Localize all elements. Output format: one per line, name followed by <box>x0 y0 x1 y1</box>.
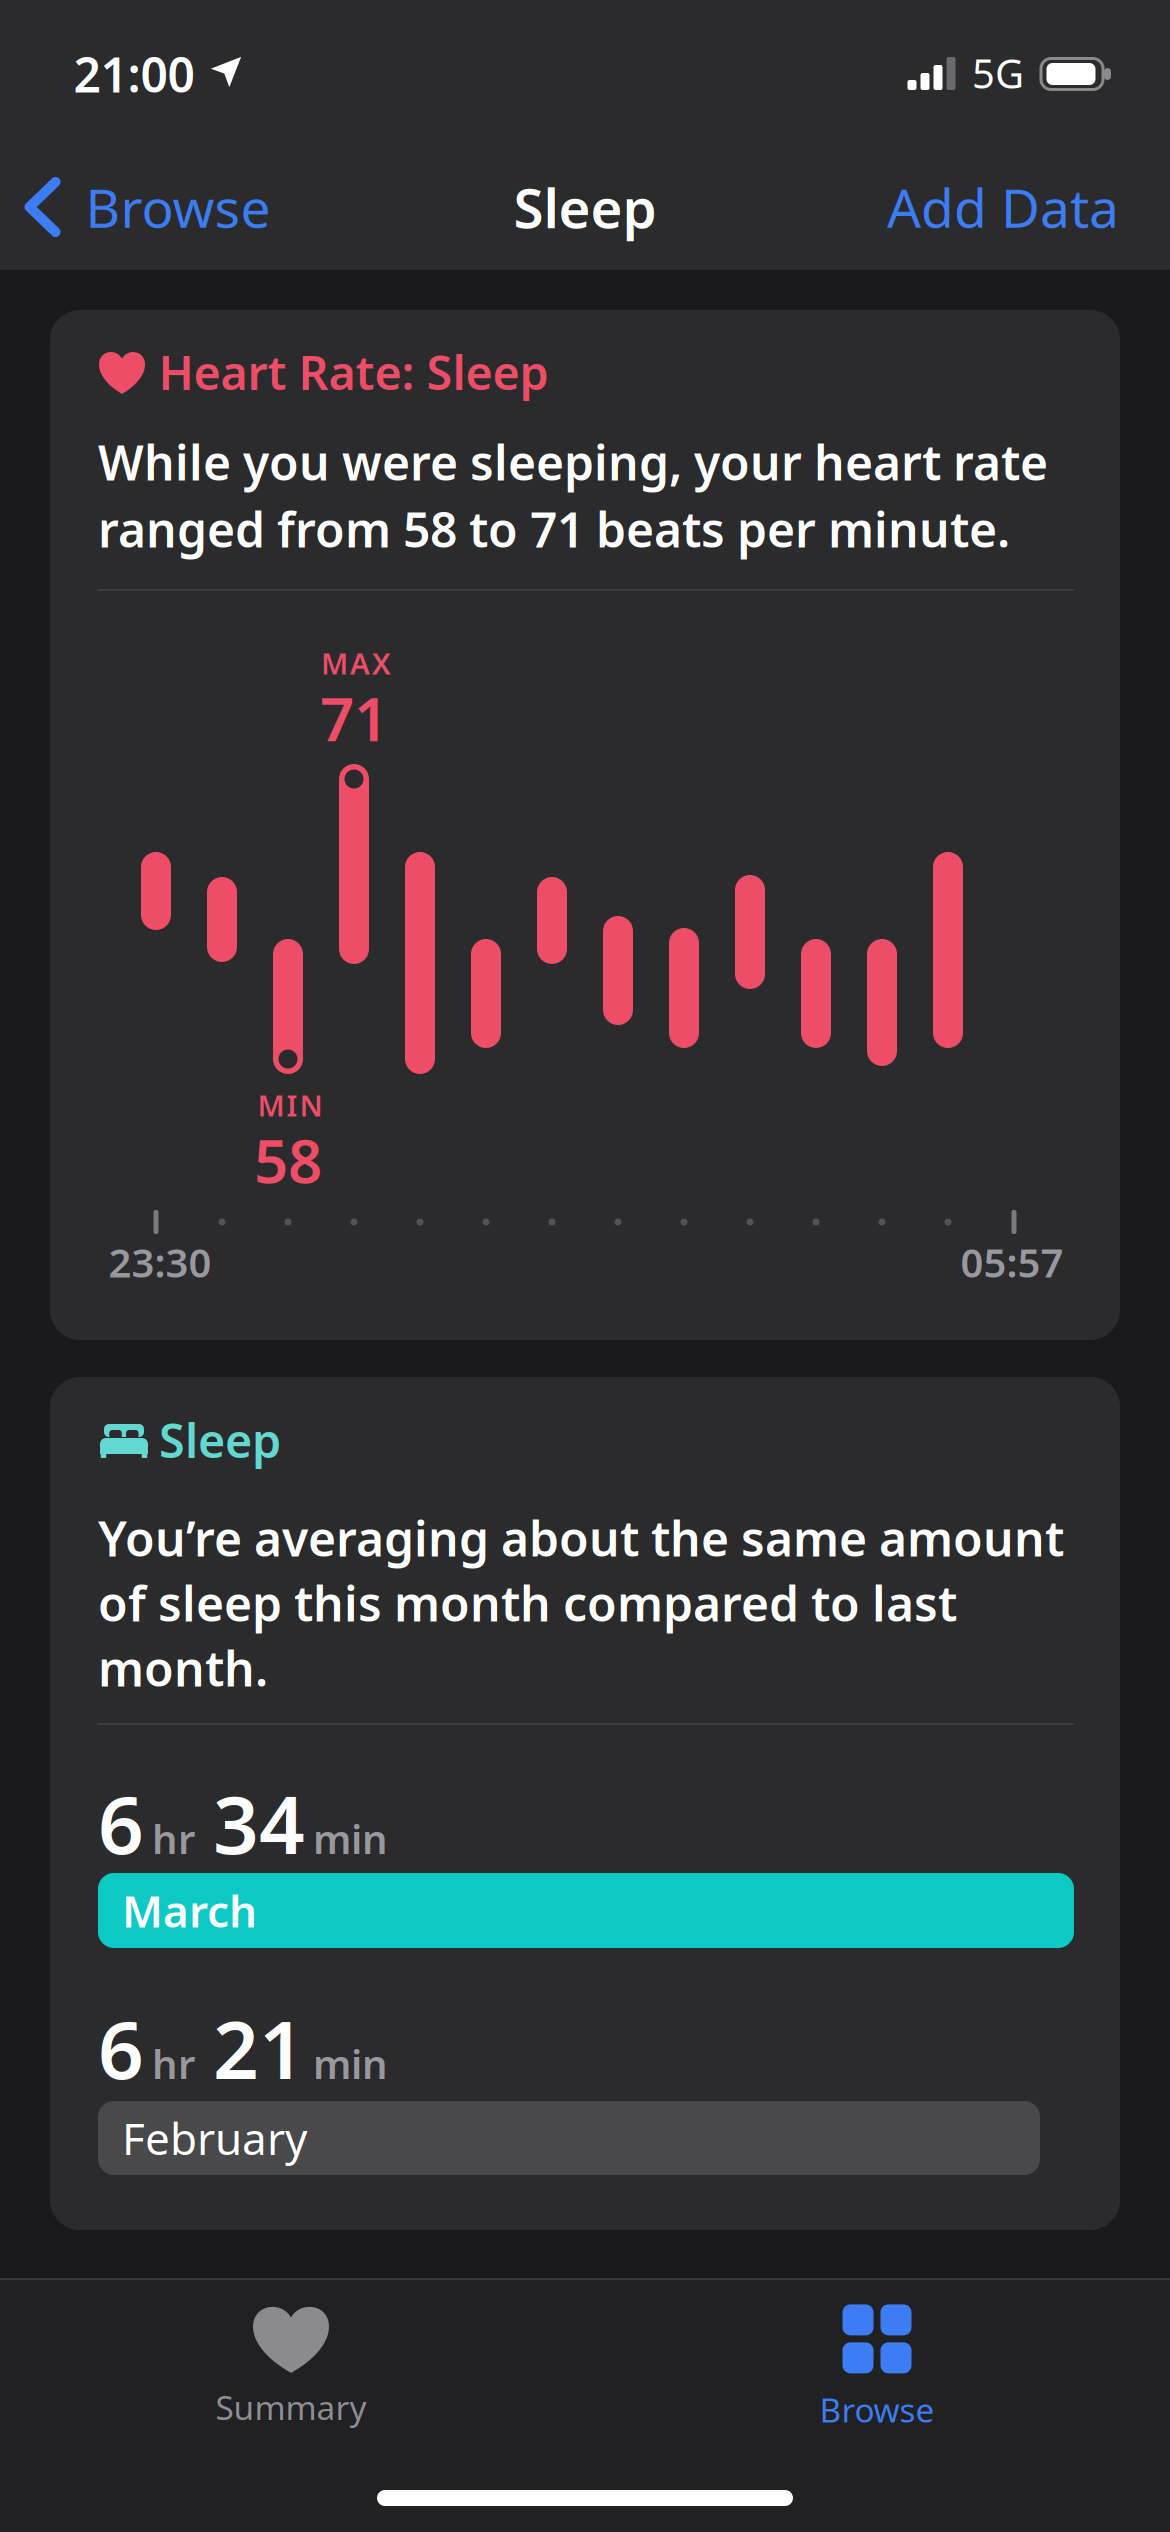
staticText: Browse <box>819 2387 934 2432</box>
staticText: MIN <box>257 1085 322 1124</box>
staticText: Browse <box>85 172 270 242</box>
staticText: 6 <box>98 1770 144 1876</box>
staticText: While you were sleeping, your heart rate <box>98 430 1048 494</box>
staticText: 21:00 <box>73 42 194 106</box>
button[interactable]: Add Data <box>887 172 1119 242</box>
button[interactable]: Summary <box>215 2307 366 2429</box>
staticText: 71 <box>320 678 388 758</box>
staticText: 5G <box>972 46 1024 99</box>
button[interactable]: Sleep <box>50 1377 1120 2230</box>
staticText: MAX <box>321 643 391 682</box>
staticText: of sleep this month compared to last <box>98 1571 957 1635</box>
staticText: Summary <box>215 2385 366 2429</box>
staticText: Heart Rate: Sleep <box>158 341 548 403</box>
staticText: 23:30 <box>108 1235 211 1288</box>
button[interactable]: Back <box>29 172 270 242</box>
staticText: Add Data <box>887 172 1119 242</box>
staticText: min <box>313 1812 388 1865</box>
staticText: hr <box>152 1812 195 1865</box>
staticText: Sleep <box>513 171 656 243</box>
staticText: March <box>122 1881 257 1940</box>
button[interactable]: Browse <box>819 2304 934 2432</box>
staticText: 34 <box>213 1770 305 1876</box>
staticText: min <box>313 2037 388 2090</box>
staticText: You’re averaging about the same amount <box>98 1506 1064 1570</box>
staticText: hr <box>152 2037 195 2090</box>
staticText: 05:57 <box>960 1235 1063 1288</box>
staticText: February <box>122 2109 307 2167</box>
staticText: 58 <box>254 1120 322 1200</box>
staticText: ranged from 58 to 71 beats per minute. <box>98 497 1010 561</box>
staticText: month. <box>98 1636 268 1700</box>
staticText: 6 <box>98 1995 144 2101</box>
button[interactable]: Heart Rate: Sleep <box>50 310 1120 1340</box>
staticText: Sleep <box>159 1409 281 1471</box>
staticText: 21 <box>213 1995 305 2101</box>
